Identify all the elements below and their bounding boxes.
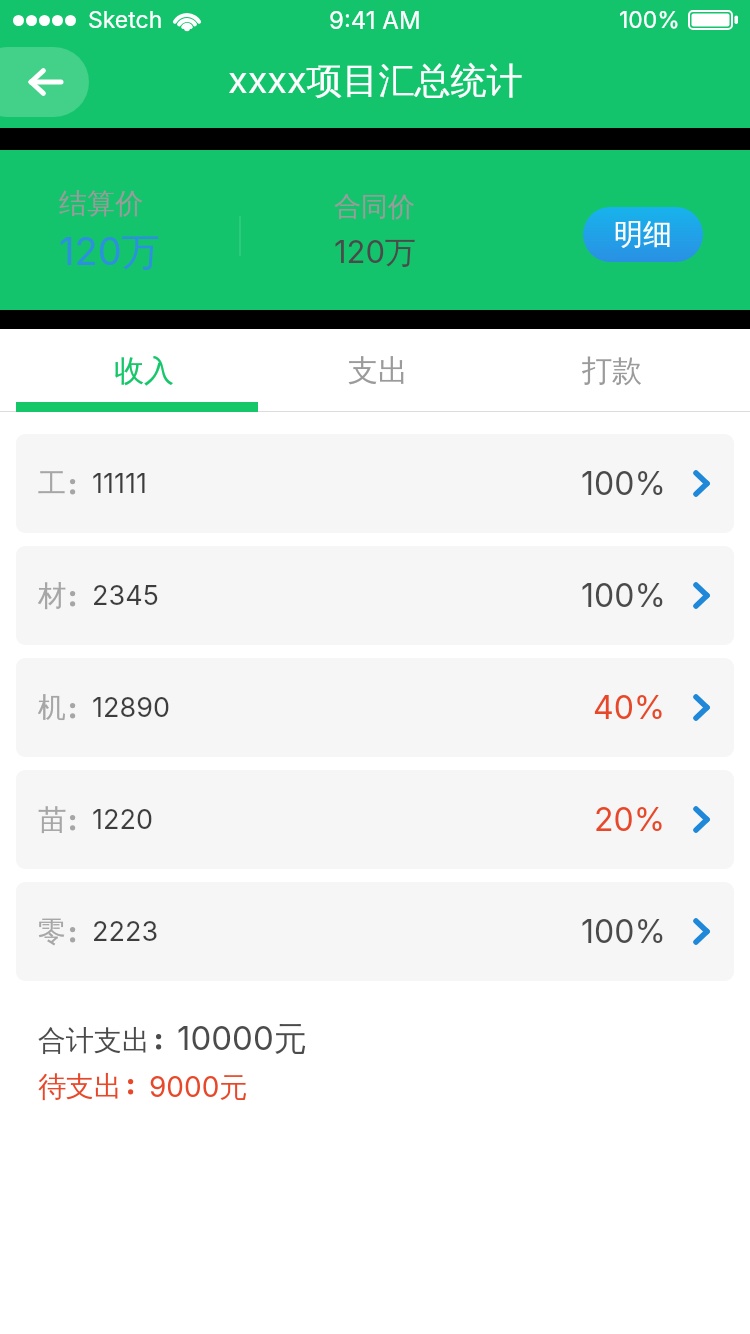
- staticText: 待支出: [38, 1069, 122, 1104]
- staticText: 结算价: [59, 186, 143, 221]
- staticText: 零: [38, 914, 66, 949]
- button[interactable]: 零: [16, 882, 734, 981]
- staticText: xxxx项目汇总统计: [228, 58, 523, 104]
- staticText: 材: [38, 578, 66, 613]
- button[interactable]: 苗: [16, 770, 734, 869]
- button[interactable]: 材: [16, 546, 734, 645]
- staticText: 合计支出: [38, 1023, 150, 1058]
- staticText: 12890: [92, 691, 170, 724]
- button[interactable]: 工: [16, 434, 734, 533]
- staticText: 11111: [92, 467, 147, 500]
- staticText: 工: [38, 466, 66, 501]
- staticText: 1220: [92, 803, 153, 836]
- staticText: 合同价: [334, 190, 415, 224]
- staticText: 40%: [593, 688, 666, 727]
- button[interactable]: 打款: [495, 329, 729, 412]
- staticText: 机: [38, 690, 66, 725]
- button[interactable]: 收入: [27, 329, 261, 412]
- staticText: 120万: [59, 228, 160, 276]
- staticText: 20%: [594, 800, 666, 839]
- staticText: 120万: [334, 233, 417, 272]
- staticText: 100%: [581, 576, 666, 615]
- staticText: 支出: [348, 352, 408, 390]
- staticText: 2223: [92, 915, 159, 948]
- staticText: Sketch: [88, 6, 163, 34]
- staticText: 100%: [581, 912, 666, 951]
- staticText: 9:41 AM: [329, 6, 421, 35]
- button[interactable]: Back: [0, 47, 89, 117]
- button[interactable]: 机: [16, 658, 734, 757]
- staticText: 打款: [582, 352, 642, 390]
- staticText: 苗: [38, 802, 66, 837]
- staticText: 100%: [581, 464, 666, 503]
- staticText: 9000元: [149, 1070, 248, 1105]
- staticText: 10000元: [177, 1018, 307, 1060]
- button[interactable]: 支出: [261, 329, 495, 412]
- staticText: 收入: [114, 352, 174, 390]
- staticText: 明细: [614, 216, 672, 253]
- button[interactable]: 明细: [583, 207, 703, 262]
- staticText: 2345: [92, 579, 159, 612]
- staticText: 100%: [619, 6, 680, 34]
